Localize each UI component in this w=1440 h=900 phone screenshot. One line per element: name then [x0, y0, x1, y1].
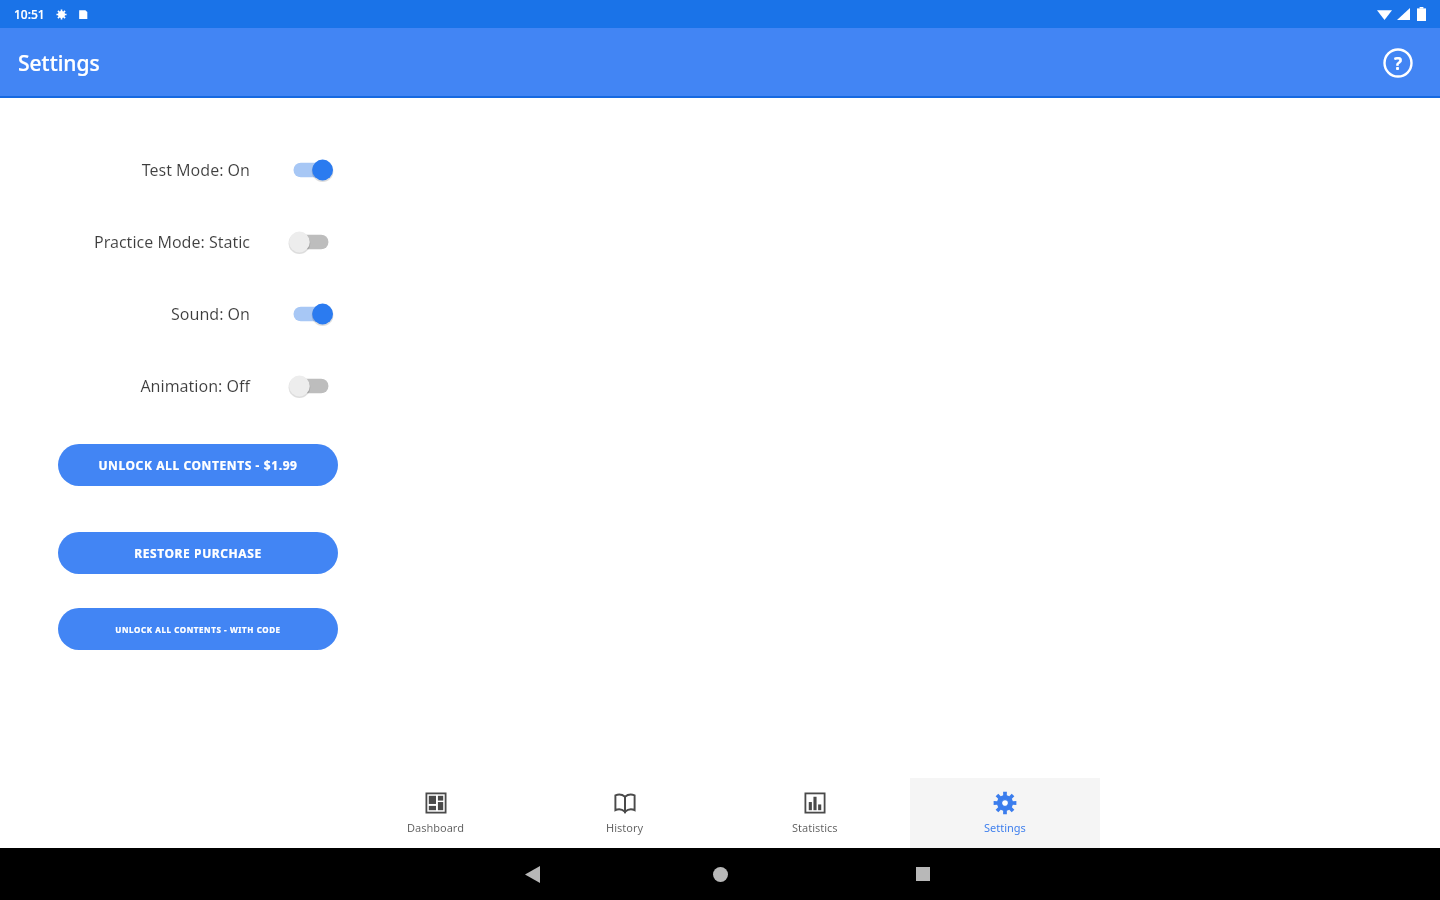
button[interactable]: UNLOCK ALL CONTENTS - WITH CODE: [58, 608, 338, 650]
staticText: Settings: [984, 820, 1026, 835]
button[interactable]: Test Mode: On: [0, 150, 340, 190]
staticText: ?: [1394, 52, 1403, 75]
button[interactable]: Back: [510, 852, 554, 896]
staticText: RESTORE PURCHASE: [134, 545, 262, 561]
button[interactable]: Dashboard: [340, 778, 530, 848]
button[interactable]: Animation: Off: [0, 366, 340, 406]
button[interactable]: RESTORE PURCHASE: [58, 532, 338, 574]
button[interactable]: History: [530, 778, 720, 848]
button[interactable]: Settings: [910, 778, 1100, 848]
staticText: Dashboard: [407, 820, 464, 835]
staticText: UNLOCK ALL CONTENTS - $1.99: [98, 457, 298, 473]
staticText: Settings: [18, 49, 100, 78]
staticText: Statistics: [792, 820, 838, 835]
staticText: UNLOCK ALL CONTENTS - WITH CODE: [115, 624, 281, 635]
staticText: Test Mode: On: [0, 159, 250, 181]
staticText: History: [606, 820, 644, 835]
button[interactable]: UNLOCK ALL CONTENTS - $1.99: [58, 444, 338, 486]
button[interactable]: Sound: On: [0, 294, 340, 334]
staticText: Practice Mode: Static: [0, 231, 250, 253]
staticText: 10:51: [14, 6, 45, 22]
button[interactable]: Home: [698, 852, 742, 896]
button[interactable]: Help: [1376, 41, 1420, 85]
staticText: Sound: On: [0, 303, 250, 325]
button[interactable]: Recent apps: [901, 852, 945, 896]
button[interactable]: Practice Mode: Static: [0, 222, 340, 262]
button[interactable]: Statistics: [720, 778, 910, 848]
staticText: Animation: Off: [0, 375, 250, 397]
